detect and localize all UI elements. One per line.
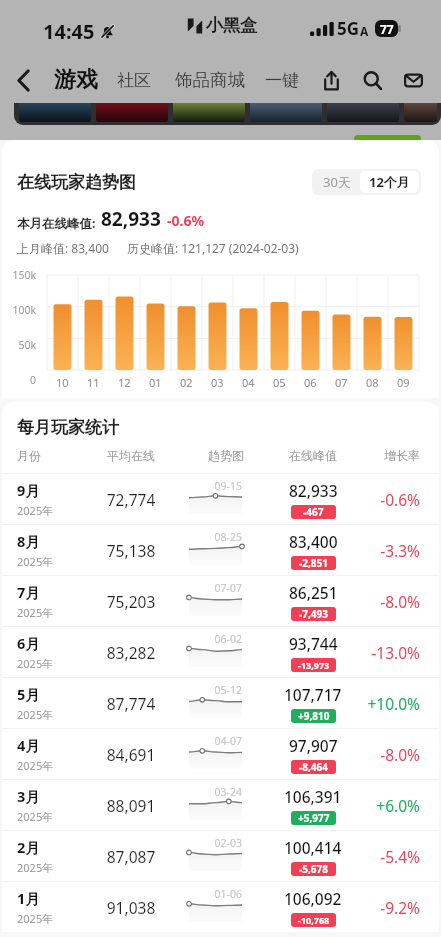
staticText: 03-24 (189, 785, 242, 799)
staticText: +9,810 (298, 709, 330, 723)
staticText: 06 (304, 375, 317, 390)
staticText: 游戏 (54, 66, 98, 94)
button[interactable]: 2月 (2, 830, 439, 881)
staticText: -13.0% (346, 642, 420, 663)
staticText: 一键 (265, 70, 299, 91)
staticText: 100k (2, 303, 36, 317)
staticText: 08 (366, 375, 379, 390)
staticText: 5G (337, 17, 360, 40)
staticText: -9.2% (346, 897, 420, 918)
staticText: 12 (118, 375, 131, 390)
staticText: 09-15 (189, 479, 242, 493)
button[interactable]: 3月 (2, 779, 439, 830)
staticText: 30天 (323, 173, 351, 191)
staticText: 87,087 (90, 846, 172, 867)
staticText: 小黑盒 (206, 15, 257, 36)
staticText: 97,907 (289, 735, 338, 756)
staticText: 100,414 (284, 837, 342, 858)
staticText: 07-07 (189, 581, 242, 595)
staticText: 91,038 (90, 897, 172, 918)
staticText: 平均在线 (90, 448, 172, 463)
staticText: 增长率 (346, 448, 420, 463)
staticText: 02 (180, 375, 193, 390)
button[interactable]: 游戏 (54, 66, 98, 94)
button[interactable]: Back (9, 66, 37, 94)
staticText: 12个月 (369, 173, 410, 191)
staticText: 75,203 (90, 591, 172, 612)
staticText: 50k (2, 338, 36, 352)
staticText: 5月 (17, 684, 40, 704)
button[interactable]: 30天 (314, 171, 360, 193)
staticText: 150k (2, 268, 36, 282)
staticText: -13,973 (298, 659, 330, 671)
staticText: 2025年 (17, 554, 54, 569)
staticText: 82,933 (101, 206, 161, 232)
staticText: -467 (303, 505, 324, 519)
staticText: 1月 (17, 888, 40, 908)
staticText: -2,851 (299, 556, 328, 570)
staticText: -0.6% (167, 211, 205, 230)
staticText: -8,464 (299, 760, 328, 774)
staticText: 106,092 (284, 888, 342, 909)
button[interactable]: 7月 (2, 575, 439, 626)
button[interactable]: Share (316, 65, 346, 95)
button[interactable]: 6月 (2, 626, 439, 677)
staticText: 2025年 (17, 605, 54, 620)
staticText: -8.0% (346, 591, 420, 612)
staticText: 每月玩家统计 (17, 417, 119, 438)
staticText: 3月 (17, 786, 40, 806)
staticText: 106,391 (284, 786, 342, 807)
staticText: 6月 (17, 633, 40, 653)
staticText: 86,251 (289, 582, 338, 603)
button[interactable]: 9月 (2, 473, 439, 524)
button[interactable]: 社区 (117, 70, 151, 91)
button[interactable]: 5月 (2, 677, 439, 728)
button[interactable]: 8月 (2, 524, 439, 575)
staticText: 04 (242, 375, 255, 390)
staticText: 2月 (17, 837, 40, 857)
staticText: 月份 (17, 448, 90, 463)
staticText: 2025年 (17, 809, 54, 824)
staticText: 01 (149, 375, 162, 390)
staticText: 2025年 (17, 860, 54, 875)
staticText: 2025年 (17, 503, 54, 518)
staticText: 05 (273, 375, 286, 390)
button[interactable]: 12个月 (360, 171, 419, 193)
staticText: 2025年 (17, 911, 54, 926)
staticText: 趋势图 (172, 448, 280, 463)
staticText: 83,400 (289, 531, 338, 552)
staticText: +5,977 (298, 811, 330, 825)
staticText: 0 (2, 373, 36, 386)
staticText: 03 (211, 375, 224, 390)
staticText: 上月峰值: 83,400 (17, 240, 109, 256)
staticText: 11 (87, 375, 100, 390)
staticText: 08-25 (189, 530, 242, 544)
staticText: -5.4% (346, 846, 420, 867)
staticText: -5,678 (299, 862, 328, 876)
button[interactable]: Search (357, 65, 387, 95)
staticText: 107,717 (284, 684, 342, 705)
staticText: 05-12 (189, 683, 242, 697)
button[interactable]: Messages (398, 65, 428, 95)
staticText: -8.0% (346, 744, 420, 765)
button[interactable]: 1月 (2, 881, 439, 932)
staticText: 本月在线峰值: (17, 215, 96, 232)
staticText: 2025年 (17, 656, 54, 671)
staticText: A (360, 23, 369, 39)
staticText: +10.0% (346, 693, 420, 714)
staticText: 14:45 (43, 18, 95, 45)
staticText: -10,768 (298, 914, 330, 926)
staticText: 07 (335, 375, 348, 390)
staticText: 84,691 (90, 744, 172, 765)
staticText: 87,774 (90, 693, 172, 714)
button[interactable]: 饰品商城 (175, 69, 245, 91)
staticText: 9月 (17, 480, 40, 500)
staticText: 历史峰值: 121,127 (2024-02-03) (127, 240, 299, 256)
staticText: 83,282 (90, 642, 172, 663)
staticText: 02-03 (189, 836, 242, 850)
button[interactable]: 4月 (2, 728, 439, 779)
staticText: 88,091 (90, 795, 172, 816)
staticText: 01-06 (189, 887, 242, 901)
button[interactable]: 一键 (265, 70, 299, 91)
staticText: 93,744 (289, 633, 338, 654)
